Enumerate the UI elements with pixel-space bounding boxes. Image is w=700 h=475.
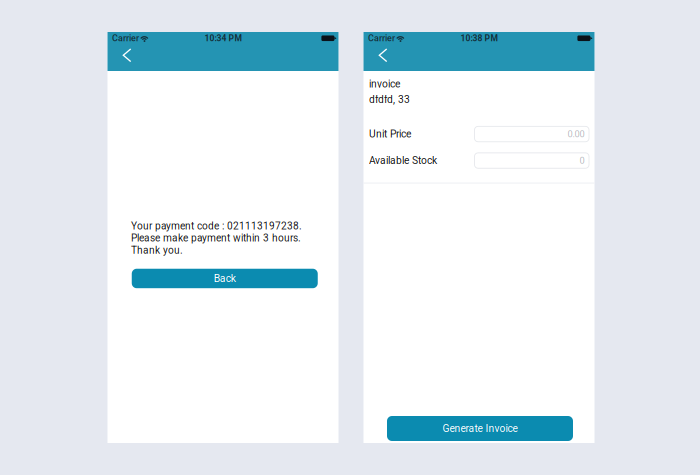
staticText: Generate Invoice xyxy=(442,422,517,434)
staticText: dfdfd, 33 xyxy=(369,93,410,105)
button[interactable]: Available Stock xyxy=(369,153,589,169)
staticText: Available Stock xyxy=(369,154,437,166)
staticText: Please make payment within 3 hours. xyxy=(131,232,301,244)
staticText: Unit Price xyxy=(369,128,411,140)
button[interactable]: Back xyxy=(115,44,139,71)
button[interactable]: Generate Invoice xyxy=(387,416,573,441)
button[interactable]: Back xyxy=(132,269,318,288)
staticText: Carrier xyxy=(112,33,139,43)
staticText: 10:34 PM xyxy=(204,33,241,43)
staticText: Carrier xyxy=(368,33,395,43)
staticText: Your payment code : 021113197238. xyxy=(131,220,302,232)
staticText: invoice xyxy=(369,78,400,90)
staticText: 0.00 xyxy=(567,129,584,139)
staticText: 0 xyxy=(579,155,584,166)
button[interactable]: Unit Price xyxy=(369,126,589,142)
staticText: Thank you. xyxy=(131,244,183,256)
staticText: 10:38 PM xyxy=(460,33,497,43)
button[interactable]: Back xyxy=(371,44,395,71)
staticText: Back xyxy=(214,272,236,285)
